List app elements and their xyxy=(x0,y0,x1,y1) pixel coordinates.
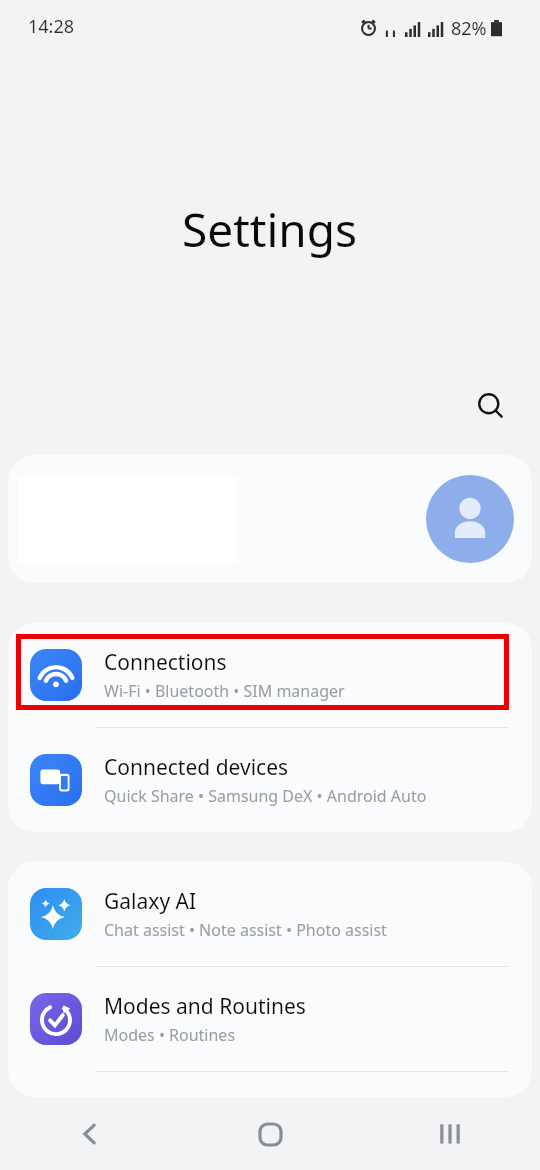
button[interactable]: Modes and Routines xyxy=(8,967,532,1071)
staticText: Chat assist • Note assist • Photo assist xyxy=(104,919,387,941)
staticText: Modes and Routines xyxy=(104,992,306,1021)
staticText: 14:28 xyxy=(28,14,75,39)
button[interactable] xyxy=(8,455,532,583)
button[interactable]: Back xyxy=(0,1098,180,1170)
button[interactable]: Recent apps xyxy=(360,1098,540,1170)
staticText: Wi-Fi • Bluetooth • SIM manager xyxy=(104,680,345,702)
button[interactable]: Galaxy AI xyxy=(8,862,532,966)
button[interactable]: Connected devices xyxy=(8,728,532,832)
staticText: Modes • Routines xyxy=(104,1024,236,1046)
staticText: Quick Share • Samsung DeX • Android Auto xyxy=(104,785,427,807)
button[interactable]: Home xyxy=(180,1098,360,1170)
button[interactable]: Search xyxy=(466,381,516,431)
button[interactable]: Connections xyxy=(8,623,532,727)
staticText: Connected devices xyxy=(104,753,289,782)
staticText: Galaxy AI xyxy=(104,887,197,916)
staticText: Connections xyxy=(104,648,227,677)
staticText: Settings xyxy=(182,198,358,261)
staticText: 82% xyxy=(451,16,487,41)
